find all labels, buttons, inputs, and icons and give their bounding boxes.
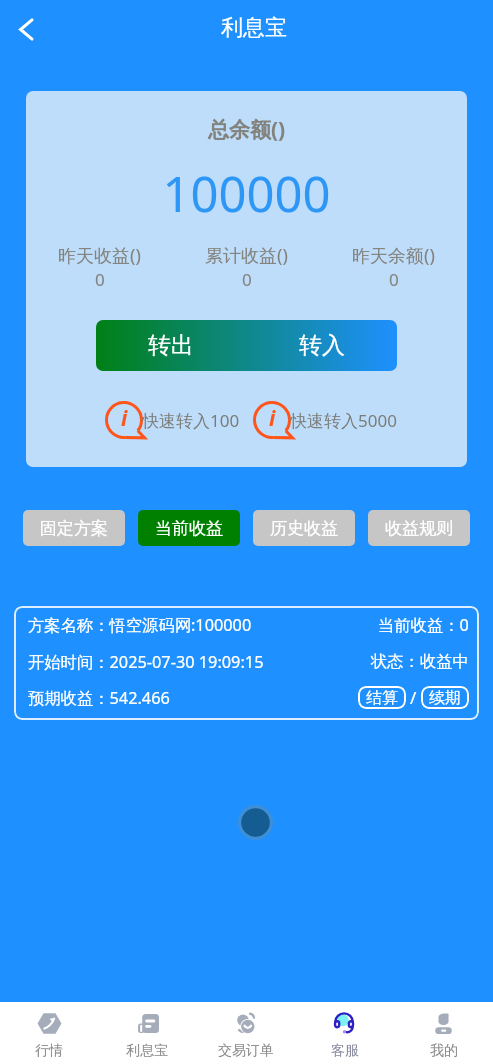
- staticText: 方案名称：悟空源码网:100000: [28, 614, 252, 636]
- button[interactable]: 历史收益: [253, 510, 355, 546]
- staticText: 开始时间：2025-07-30 19:09:15: [28, 651, 264, 673]
- staticText: 0: [242, 268, 252, 291]
- button[interactable]: 结算: [358, 686, 406, 709]
- staticText: 固定方案: [40, 518, 108, 539]
- staticText: 历史收益: [270, 518, 338, 539]
- button[interactable]: 收益规则: [368, 510, 470, 546]
- staticText: 昨天收益(): [58, 243, 141, 268]
- staticText: 交易订单: [218, 1042, 274, 1060]
- button[interactable]: i: [253, 400, 400, 440]
- staticText: i: [269, 404, 276, 433]
- staticText: 当前收益: [155, 518, 223, 539]
- button[interactable]: 转出: [96, 320, 246, 371]
- staticText: 快速转入100: [142, 409, 240, 432]
- staticText: 快速转入5000: [290, 409, 397, 432]
- button[interactable]: 我的: [394, 1002, 493, 1064]
- staticText: 结算: [366, 688, 398, 708]
- staticText: 续期: [429, 688, 461, 708]
- button[interactable]: 当前收益: [138, 510, 240, 546]
- staticText: 100000: [26, 160, 467, 227]
- button[interactable]: i: [105, 400, 243, 440]
- button[interactable]: 行情: [0, 1002, 98, 1064]
- staticText: 预期收益：542.466: [28, 687, 170, 709]
- button[interactable]: 交易订单: [196, 1002, 295, 1064]
- staticText: 行情: [35, 1042, 63, 1060]
- button[interactable]: 客服: [295, 1002, 394, 1064]
- staticText: 收益规则: [385, 518, 453, 539]
- staticText: 我的: [430, 1042, 458, 1060]
- staticText: /: [410, 686, 417, 709]
- staticText: 客服: [331, 1042, 359, 1060]
- staticText: 昨天余额(): [352, 243, 435, 268]
- staticText: 利息宝: [126, 1042, 168, 1060]
- staticText: i: [121, 404, 128, 433]
- staticText: 总余额(): [26, 115, 467, 144]
- staticText: 转出: [148, 331, 194, 360]
- staticText: 0: [389, 268, 399, 291]
- staticText: 当前收益：0: [378, 614, 469, 636]
- staticText: 0: [95, 268, 105, 291]
- button[interactable]: 利息宝: [98, 1002, 196, 1064]
- staticText: 累计收益(): [205, 243, 288, 268]
- staticText: 利息宝: [221, 14, 287, 42]
- button[interactable]: 固定方案: [23, 510, 125, 546]
- button[interactable]: 续期: [421, 686, 469, 709]
- button[interactable]: Back: [6, 9, 46, 49]
- button[interactable]: 转入: [246, 320, 397, 371]
- staticText: 转入: [299, 331, 345, 360]
- staticText: 状态：收益中: [371, 651, 469, 672]
